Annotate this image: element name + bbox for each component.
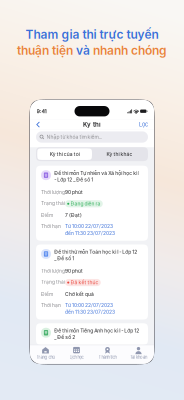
staticText: - Lớp 12 _ Đề số 1 [54, 177, 93, 183]
staticText: Tài khoản [130, 355, 147, 360]
staticText: Lọc [139, 121, 148, 128]
button[interactable]: Nhập từ khóa tìm kiếm... [30, 130, 154, 147]
staticText: 90 phút [65, 189, 83, 195]
staticText: Trạng thái [41, 200, 65, 206]
staticText: Đã kết thúc [71, 280, 99, 286]
staticText: Nhập từ khóa tìm kiếm... [46, 134, 101, 140]
staticText: Điểm [41, 212, 53, 218]
staticText: thuận tiện [17, 43, 73, 57]
button[interactable]: Trang chủ [30, 345, 61, 365]
staticText: Thời lượng [41, 189, 65, 195]
staticText: Chờ kết quả [65, 291, 94, 297]
button[interactable]: Tài khoản [123, 345, 154, 365]
button[interactable]: Kỳ thi khác [92, 148, 147, 160]
staticText: Đề thi thử môn Toán học kì I - Lớp 12 [54, 249, 137, 255]
staticText: Lịch học [69, 355, 83, 360]
staticText: Từ 10:00 22/07/2023 [65, 302, 113, 308]
button[interactable]: Lọc [134, 119, 148, 130]
staticText: Thời hạn [41, 223, 61, 229]
button[interactable]: Thành tích [92, 345, 123, 365]
staticText: Từ 10:00 22/07/2023 [65, 223, 113, 229]
button[interactable]: Lịch học [61, 345, 92, 365]
staticText: Điểm [41, 291, 53, 297]
staticText: _ Đề số 1 [54, 255, 74, 261]
staticText: Trạng thái [41, 279, 65, 285]
staticText: Kỳ thi khác [106, 151, 132, 157]
staticText: Thời hạn [41, 302, 61, 308]
staticText: Đang diễn ra [71, 201, 101, 207]
staticText: đến 11:30 23/07/2023 [65, 309, 115, 315]
staticText: 7 (Đạt) [65, 212, 82, 218]
button[interactable]: Đề thi thử môn Toán học kì I - Lớp 12 [36, 244, 148, 320]
staticText: Đề thi môn Tiếng Anh học kì I - Lớp 12 [54, 328, 139, 334]
staticText: Kỳ thi [83, 121, 101, 128]
button[interactable]: Đề thi môn Tự nhiên và Xã hội học kì I [36, 166, 148, 241]
staticText: 9:41 [36, 108, 46, 114]
staticText: Thành tích [98, 355, 116, 360]
button[interactable]: Back [36, 119, 50, 130]
staticText: Đề thi môn Tự nhiên và Xã hội học kì I [54, 170, 139, 176]
staticText: 90 phút [65, 268, 83, 274]
staticText: và [76, 43, 90, 57]
staticText: Trang chủ [36, 355, 54, 360]
staticText: nhanh chóng [93, 43, 167, 57]
button[interactable]: Kỳ thi của tôi [37, 148, 92, 160]
button[interactable]: Đề thi môn Tiếng Anh học kì I - Lớp 12 [36, 323, 148, 345]
staticText: _ Đề số 2 [54, 334, 75, 340]
staticText: Kỳ thi của tôi [50, 151, 80, 157]
staticText: Thời lượng [41, 268, 65, 274]
staticText: Tham gia thi trực tuyến [25, 27, 158, 41]
staticText: đến 11:30 23/07/2023 [65, 230, 115, 236]
